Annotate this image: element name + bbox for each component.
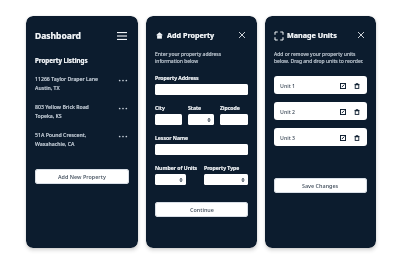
staticText: Austin, TX bbox=[35, 84, 60, 91]
staticText: City bbox=[155, 104, 165, 111]
staticText: Waxahachie, CA bbox=[35, 140, 75, 147]
staticText: 51A Pound Crescent, bbox=[35, 131, 87, 138]
button[interactable]: Unit 3 bbox=[274, 128, 367, 146]
button[interactable]: Add New Property bbox=[35, 169, 129, 184]
button[interactable]: Edit unit bbox=[338, 107, 347, 116]
button[interactable]: More options bbox=[117, 131, 129, 141]
button[interactable]: Continue bbox=[155, 202, 248, 217]
button[interactable]: 11266 Taylor Draper Lane bbox=[35, 75, 129, 91]
button[interactable]: Save Changes bbox=[274, 178, 367, 193]
staticText: Property Listings bbox=[35, 56, 88, 64]
button[interactable]: 803 Yellow Brick Road bbox=[35, 103, 129, 119]
staticText: Add Property bbox=[167, 30, 215, 40]
button[interactable] bbox=[220, 114, 248, 125]
staticText: Lessor Name bbox=[155, 134, 188, 141]
button[interactable]: Delete unit bbox=[352, 133, 361, 142]
button[interactable]: Delete unit bbox=[352, 81, 361, 90]
staticText: Manage Units bbox=[287, 30, 337, 40]
staticText: Unit 1 bbox=[280, 82, 296, 89]
staticText: Zipcode bbox=[220, 104, 240, 111]
button[interactable]: Unit 2 bbox=[274, 102, 367, 120]
button[interactable]: Close bbox=[236, 29, 248, 41]
button[interactable]: Edit unit bbox=[338, 133, 347, 142]
staticText: State bbox=[188, 104, 202, 111]
staticText: Topeka, KS bbox=[35, 112, 62, 119]
staticText: 11266 Taylor Draper Lane bbox=[35, 75, 99, 82]
button[interactable] bbox=[155, 144, 248, 155]
button[interactable]: Edit unit bbox=[338, 81, 347, 90]
button[interactable]: 51A Pound Crescent, bbox=[35, 131, 129, 147]
staticText: Dashboard bbox=[35, 30, 81, 42]
staticText: Property Type bbox=[204, 164, 240, 171]
staticText: Number of Units bbox=[155, 164, 198, 171]
staticText: Continue bbox=[190, 206, 214, 213]
button[interactable] bbox=[188, 114, 214, 125]
button[interactable] bbox=[204, 174, 248, 185]
button[interactable]: Unit 1 bbox=[274, 76, 367, 94]
staticText: Add New Property bbox=[58, 173, 106, 180]
button[interactable]: Close bbox=[355, 29, 367, 41]
button[interactable]: Delete unit bbox=[352, 107, 361, 116]
staticText: 803 Yellow Brick Road bbox=[35, 103, 89, 110]
staticText: Property Address bbox=[155, 74, 199, 81]
button[interactable]: Menu bbox=[115, 29, 129, 43]
button[interactable] bbox=[155, 114, 182, 125]
staticText: Enter your property address information … bbox=[155, 51, 248, 65]
staticText: Add or remove your property units below.… bbox=[274, 51, 367, 65]
button[interactable]: More options bbox=[117, 103, 129, 113]
button[interactable] bbox=[155, 84, 248, 95]
button[interactable]: More options bbox=[117, 75, 129, 85]
button[interactable] bbox=[155, 174, 186, 185]
staticText: Unit 3 bbox=[280, 134, 296, 141]
staticText: Save Changes bbox=[302, 182, 339, 189]
staticText: Unit 2 bbox=[280, 108, 296, 115]
